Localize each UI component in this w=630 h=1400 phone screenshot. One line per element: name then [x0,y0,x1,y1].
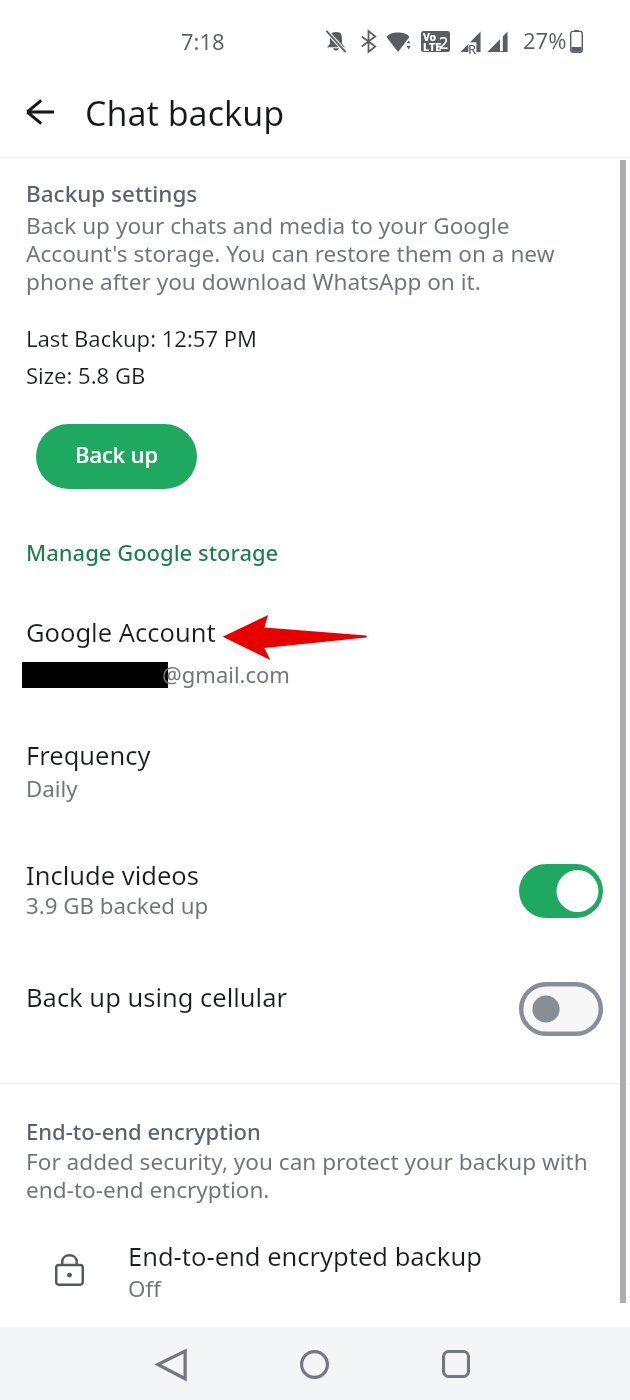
staticText: 2 [439,32,449,52]
staticText: Back up your chats and media to your Goo… [26,210,561,297]
staticText: Manage Google storage [26,537,279,567]
staticText: @gmail.com [162,659,290,689]
staticText: Backup settings [26,178,198,209]
staticText: Include videos [26,858,199,893]
staticText: Frequency [26,738,151,773]
button[interactable] [0,855,630,935]
staticText: End-to-end encrypted backup [128,1239,482,1274]
button[interactable]: Back [12,84,68,140]
staticText: Off [128,1273,161,1303]
staticText: Google Account [26,615,216,650]
staticText: Last Backup: 12:57 PM [26,323,257,353]
staticText: 3.9 GB backed up [26,890,209,920]
staticText: Back up [75,439,159,469]
button[interactable]: Back [135,1328,207,1400]
button[interactable]: Back up [36,424,197,489]
staticText: Size: 5.8 GB [26,360,146,390]
staticText: End-to-end encryption [26,1116,261,1146]
staticText: Back up using cellular [26,980,288,1015]
staticText: R [468,40,477,58]
button[interactable]: Recent apps [420,1328,492,1400]
staticText: 27% [523,25,567,55]
button[interactable] [0,1228,630,1304]
staticText: LTE [423,39,442,52]
staticText: Chat backup [85,90,285,136]
button[interactable]: Manage Google storage [26,537,279,567]
staticText: For added security, you can protect your… [26,1146,596,1205]
staticText: Vo [423,31,437,44]
staticText: 7:18 [181,26,225,56]
button[interactable] [0,735,630,815]
staticText: Daily [26,773,78,803]
button[interactable]: Home [278,1328,350,1400]
button[interactable] [0,612,630,696]
button[interactable] [0,975,630,1045]
